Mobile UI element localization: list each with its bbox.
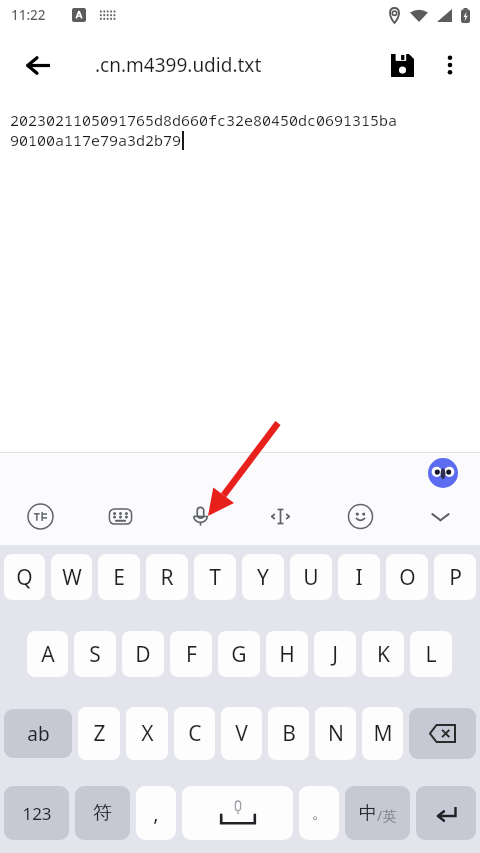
button[interactable]: I <box>338 554 380 600</box>
button[interactable]: Backspace <box>409 708 476 759</box>
button[interactable]: W <box>51 554 92 600</box>
button[interactable]: U <box>290 554 332 600</box>
staticText: C <box>188 719 202 748</box>
staticText: U <box>303 563 319 592</box>
staticText: L <box>425 640 437 669</box>
staticText: E <box>113 563 125 592</box>
staticText: W <box>62 563 82 592</box>
button[interactable]: Save <box>378 41 426 89</box>
button[interactable]: 。 <box>299 786 339 840</box>
staticText: I <box>355 563 363 592</box>
staticText: 2023021105091765d8d660fc32e80450dc069131… <box>10 110 398 130</box>
button[interactable]: G <box>218 631 260 677</box>
staticText: X <box>141 719 154 748</box>
staticText: Z <box>93 719 106 748</box>
button[interactable]: ab <box>4 709 72 758</box>
staticText: S <box>89 640 101 669</box>
button[interactable]: A <box>27 631 68 677</box>
staticText: D <box>135 640 151 669</box>
button[interactable]: O <box>386 554 428 600</box>
button[interactable]: Hide keyboard <box>400 487 480 545</box>
staticText: 符 <box>93 801 112 825</box>
button[interactable]: S <box>74 631 116 677</box>
staticText: K <box>377 640 390 669</box>
button[interactable]: Space <box>182 786 293 840</box>
staticText: 11:22 <box>11 6 46 24</box>
staticText: /英 <box>377 806 397 825</box>
button[interactable]: Text editing <box>240 487 320 545</box>
staticText: F <box>186 640 197 669</box>
button[interactable]: Keyboard layout <box>80 487 160 545</box>
staticText: , <box>153 800 159 827</box>
button[interactable]: X <box>126 707 168 760</box>
button[interactable]: Back <box>14 41 62 89</box>
staticText: P <box>449 563 462 592</box>
staticText: O <box>399 563 416 592</box>
staticText: A <box>41 640 55 669</box>
button[interactable]: F <box>170 631 212 677</box>
button[interactable]: More options <box>426 41 474 89</box>
button[interactable]: 123 <box>4 786 69 840</box>
button[interactable]: T <box>194 554 236 600</box>
button[interactable]: Y <box>242 554 284 600</box>
button[interactable]: E <box>98 554 140 600</box>
button[interactable]: B <box>268 707 309 760</box>
staticText: G <box>231 640 247 669</box>
button[interactable]: Z <box>78 707 120 760</box>
staticText: R <box>160 563 174 592</box>
staticText: B <box>282 719 296 748</box>
staticText: H <box>279 640 295 669</box>
button[interactable]: P <box>434 554 476 600</box>
button[interactable]: , <box>136 786 176 840</box>
staticText: 123 <box>22 802 52 825</box>
button[interactable]: Q <box>4 554 45 600</box>
staticText: T <box>209 563 221 592</box>
button[interactable]: 中 <box>345 786 410 840</box>
button[interactable]: Input method <box>0 487 80 545</box>
button[interactable]: H <box>266 631 308 677</box>
button[interactable]: L <box>410 631 452 677</box>
button[interactable]: J <box>314 631 356 677</box>
staticText: .cn.m4399.udid.txt <box>95 52 262 78</box>
staticText: 。 <box>312 804 327 823</box>
button[interactable]: Account avatar <box>428 458 458 488</box>
staticText: N <box>328 719 344 748</box>
button[interactable]: N <box>315 707 356 760</box>
button[interactable]: R <box>146 554 188 600</box>
button[interactable]: D <box>122 631 164 677</box>
staticText: Q <box>16 563 33 592</box>
staticText: J <box>332 640 338 669</box>
staticText: V <box>235 719 248 748</box>
staticText: M <box>373 719 393 748</box>
staticText: Y <box>257 563 269 592</box>
button[interactable]: C <box>174 707 215 760</box>
button[interactable]: Emoji <box>320 487 400 545</box>
staticText: 90100a117e79a3d2b79 <box>10 130 182 150</box>
button[interactable]: Voice input <box>160 487 240 545</box>
button[interactable]: M <box>362 707 403 760</box>
button[interactable]: 符 <box>75 786 130 840</box>
button[interactable]: V <box>221 707 262 760</box>
button[interactable]: Enter <box>416 786 476 840</box>
staticText: ab <box>27 721 50 747</box>
button[interactable]: K <box>362 631 404 677</box>
staticText: 中 <box>359 802 377 825</box>
